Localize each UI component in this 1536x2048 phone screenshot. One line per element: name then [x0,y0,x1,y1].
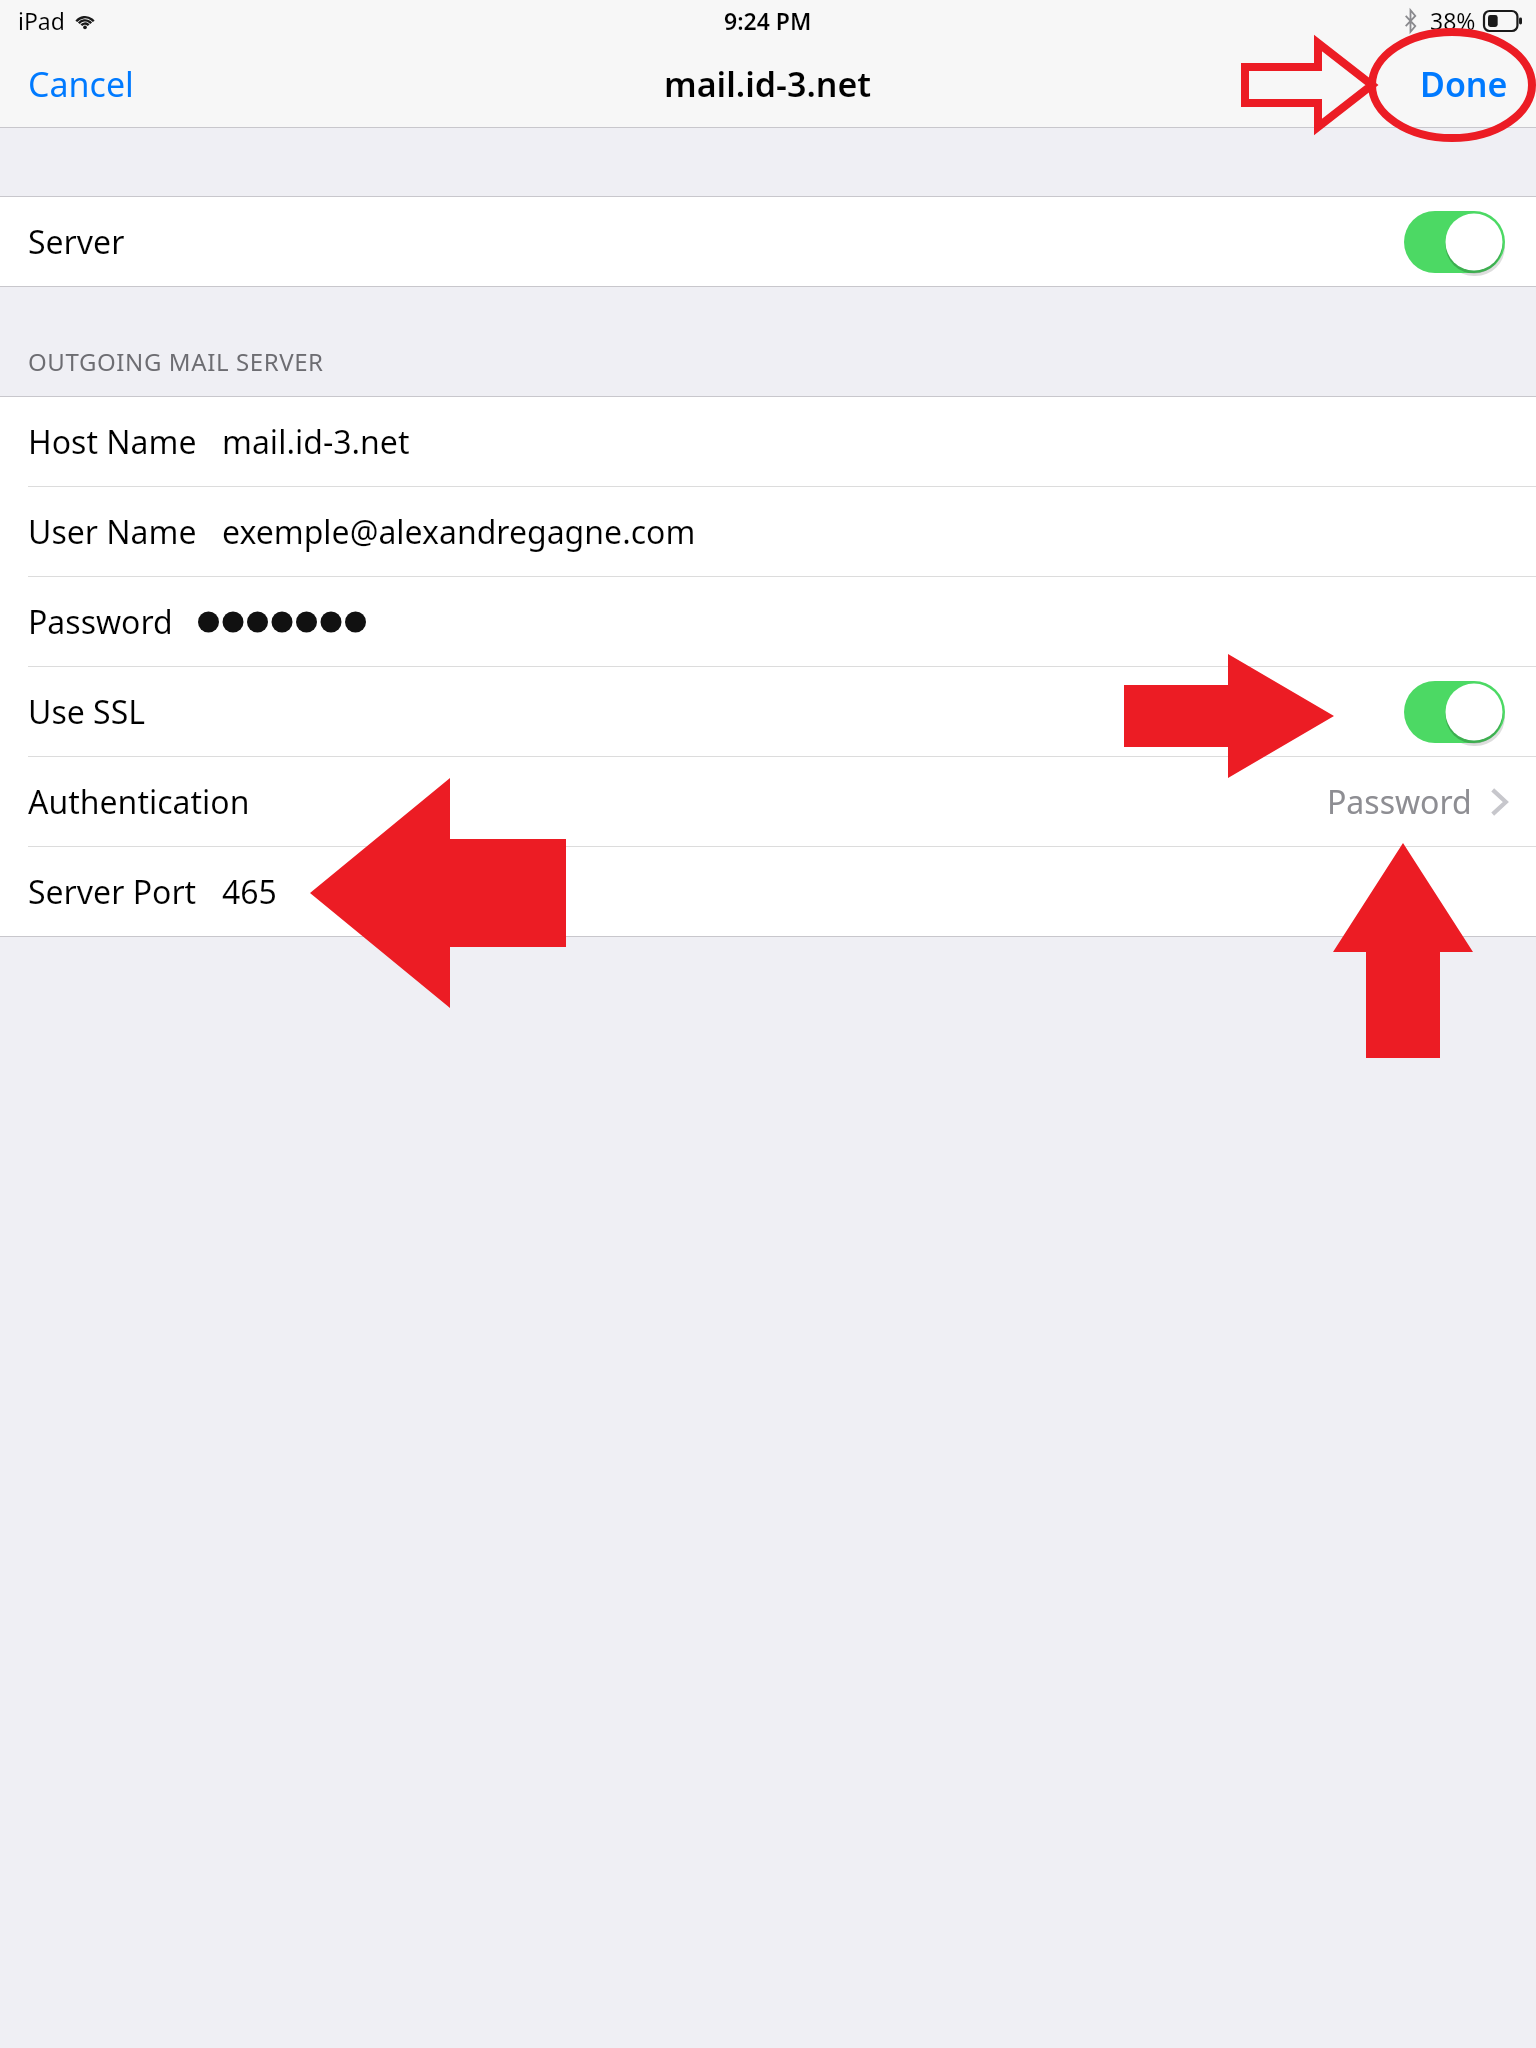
button[interactable]: Toggle on [1404,681,1505,743]
staticText: Host Name [28,420,197,464]
staticText: Authentication [28,780,250,824]
staticText: Done [1420,61,1508,107]
staticText: mail.id-3.net [222,420,410,464]
button[interactable]: Host Name [0,397,1536,486]
staticText: Cancel [28,61,134,107]
button[interactable]: Server [0,197,1536,286]
button[interactable]: Authentication [0,757,1536,846]
button[interactable]: User Name [0,487,1536,576]
staticText: Password [1327,780,1472,824]
staticText: Server [28,220,125,264]
staticText: 9:24 PM [724,5,812,36]
button[interactable]: Password [0,577,1536,666]
staticText: mail.id-3.net [664,61,872,107]
button[interactable]: Server Port [0,847,1536,936]
staticText: User Name [28,510,197,554]
staticText: Password [28,600,173,644]
button[interactable]: Toggle on [1404,211,1505,273]
staticText: Server Port [28,870,197,914]
staticText: 465 [222,870,277,914]
staticText: OUTGOING MAIL SERVER [28,345,324,378]
button[interactable]: Use SSL [0,667,1536,756]
button[interactable]: Done [1392,45,1536,123]
staticText: iPad [18,5,65,36]
button[interactable]: Cancel [0,45,162,123]
staticText: 38% [1430,5,1476,36]
staticText: exemple@alexandregagne.com [222,510,696,554]
staticText: Use SSL [28,690,145,734]
